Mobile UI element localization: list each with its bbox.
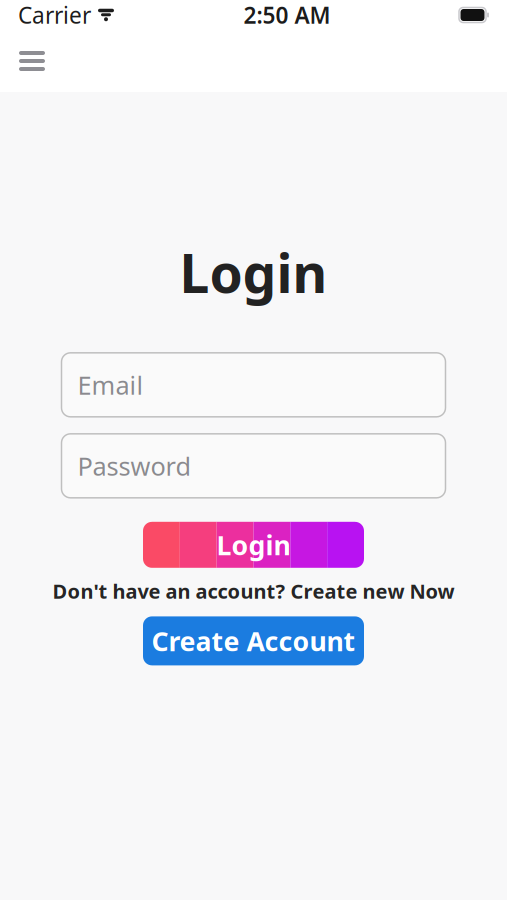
staticText: Password (77, 449, 191, 483)
staticText: 2:50 AM (243, 0, 330, 30)
staticText: Carrier (18, 0, 91, 30)
staticText: Create Account (151, 623, 355, 659)
button[interactable]: Login (143, 522, 364, 568)
staticText: Email (77, 368, 143, 402)
button[interactable]: Create Account (143, 616, 364, 665)
staticText: Login (179, 237, 327, 308)
button[interactable]: Menu (10, 39, 54, 83)
staticText: Don't have an account? Create new Now (52, 578, 454, 604)
staticText: Login (216, 527, 290, 562)
